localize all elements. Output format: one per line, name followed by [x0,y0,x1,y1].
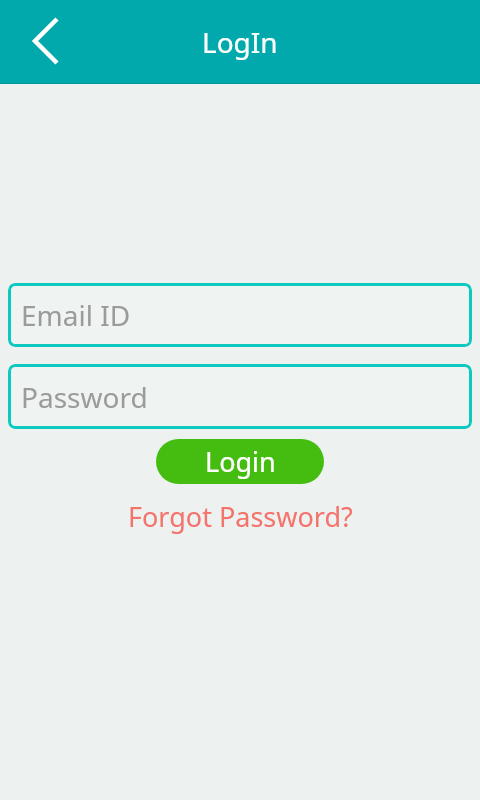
staticText: LogIn [202,23,278,61]
staticText: Forgot Password? [128,498,353,535]
button[interactable]: Login [156,439,324,484]
button[interactable] [27,18,75,66]
button[interactable]: Password [8,364,472,429]
button[interactable]: Forgot Password? [128,498,353,535]
staticText: Email ID [21,296,131,334]
button[interactable]: Email ID [8,283,472,347]
staticText: Login [205,443,276,480]
staticText: Password [21,378,148,416]
